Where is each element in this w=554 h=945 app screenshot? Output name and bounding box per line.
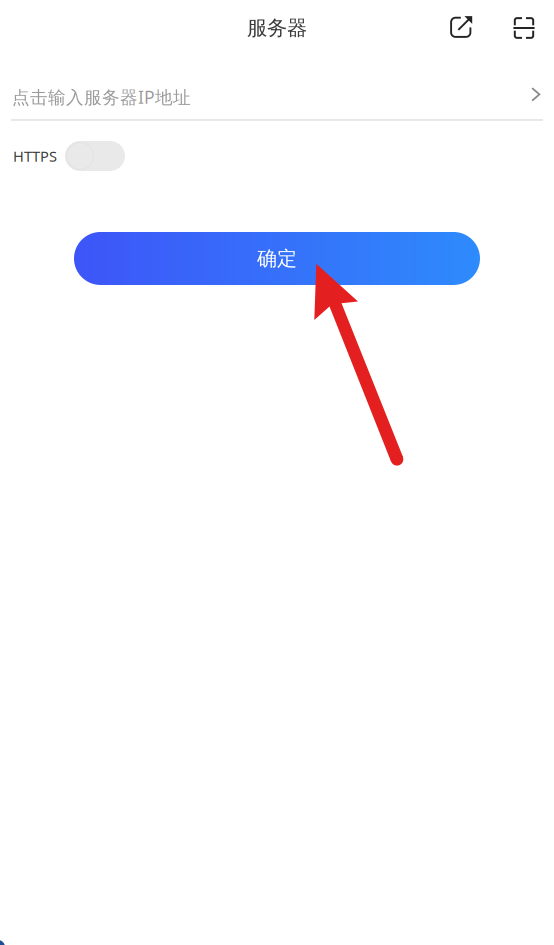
button[interactable]: Share	[440, 4, 484, 48]
staticText: 确定	[257, 246, 297, 271]
button[interactable]: HTTPS	[65, 141, 125, 171]
button[interactable]: 确定	[74, 232, 480, 285]
staticText: HTTPS	[13, 146, 57, 166]
button[interactable]: 点击输入服务器IP地址	[0, 66, 554, 121]
staticText: 服务器	[247, 15, 307, 41]
staticText: 点击输入服务器IP地址	[12, 85, 191, 109]
button[interactable]: Scan QR code	[502, 6, 546, 50]
